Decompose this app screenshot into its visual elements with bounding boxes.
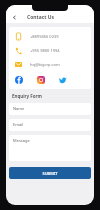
staticText: hq@bigcrp.com <box>30 62 60 67</box>
staticText: Enquiry Form <box>12 93 42 99</box>
button[interactable]: +955 9800 1994 <box>14 46 86 54</box>
staticText: Message <box>13 138 30 143</box>
button[interactable]: Name <box>9 103 91 115</box>
button[interactable]: Facebook <box>14 75 23 84</box>
button[interactable]: Twitter <box>58 75 67 84</box>
button[interactable]: hq@bigcrp.com <box>14 60 86 68</box>
staticText: +955 9800 1994 <box>30 48 60 53</box>
button[interactable]: +8899456 0239 <box>14 32 86 40</box>
button[interactable]: Back <box>10 13 19 22</box>
button[interactable]: Message <box>9 135 91 161</box>
staticText: Email <box>13 122 24 127</box>
staticText: +8899456 0239 <box>30 34 59 39</box>
staticText: SUBMIT <box>42 171 58 176</box>
staticText: Name <box>13 106 25 111</box>
button[interactable]: Email <box>9 119 91 131</box>
button[interactable]: SUBMIT <box>9 167 91 179</box>
staticText: Contact Us <box>27 14 55 21</box>
button[interactable]: Instagram <box>36 75 45 84</box>
